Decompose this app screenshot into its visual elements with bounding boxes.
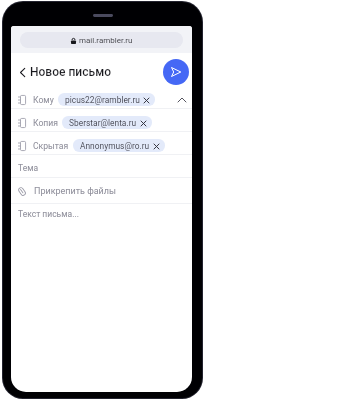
button[interactable]: mail.rambler.ru xyxy=(20,32,183,48)
button[interactable]: Кому xyxy=(11,86,192,109)
button[interactable]: Прикрепить файлы xyxy=(11,178,192,204)
staticText: Текст письма... xyxy=(18,209,79,219)
staticText: Кому xyxy=(33,95,54,105)
staticText: Новое письмо xyxy=(30,65,111,79)
staticText: Sberstar@lenta.ru xyxy=(69,118,137,128)
button[interactable]: Back xyxy=(15,65,29,79)
staticText: Скрытая xyxy=(33,141,69,151)
button[interactable]: Скрытая xyxy=(11,132,192,155)
button[interactable]: Send xyxy=(163,59,189,85)
button[interactable]: picus22@rambler.ru xyxy=(58,93,155,106)
staticText: Прикрепить файлы xyxy=(34,186,117,197)
button[interactable]: Sberstar@lenta.ru xyxy=(62,116,152,129)
button[interactable]: Collapse recipients xyxy=(176,94,188,106)
button[interactable]: Тема xyxy=(11,155,192,178)
staticText: picus22@rambler.ru xyxy=(65,95,140,105)
button[interactable]: Annonymus@ro.ru xyxy=(73,139,165,152)
staticText: Annonymus@ro.ru xyxy=(80,141,150,151)
button[interactable]: Текст письма... xyxy=(11,204,192,392)
staticText: Тема xyxy=(18,163,39,173)
button[interactable]: Копия xyxy=(11,109,192,132)
staticText: Копия xyxy=(33,118,58,128)
staticText: mail.rambler.ru xyxy=(79,36,133,45)
